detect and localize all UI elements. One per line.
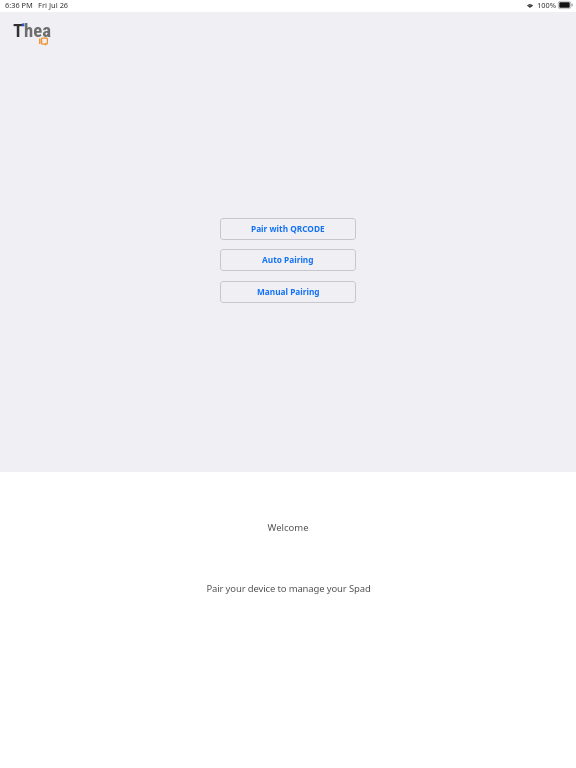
button[interactable]: Auto Pairing (220, 249, 356, 271)
staticText: 6:36 PM (5, 0, 33, 10)
staticText: Auto Pairing (262, 254, 314, 265)
staticText: Welcome (267, 521, 309, 534)
staticText: Pair your device to manage your Spad (206, 582, 371, 595)
other: Wi-Fi connected (526, 2, 534, 8)
staticText: Fri Jul 26 (38, 0, 69, 10)
other: Thea IQ logo (13, 22, 63, 52)
staticText: hea (24, 20, 51, 42)
button[interactable]: Pair with QRCODE (220, 218, 356, 240)
other: Battery full (558, 1, 573, 9)
staticText: Pair with QRCODE (251, 223, 325, 234)
staticText: Manual Pairing (257, 286, 320, 297)
staticText: 100% (537, 0, 556, 10)
staticText: T (13, 20, 24, 42)
button[interactable]: Manual Pairing (220, 281, 356, 303)
